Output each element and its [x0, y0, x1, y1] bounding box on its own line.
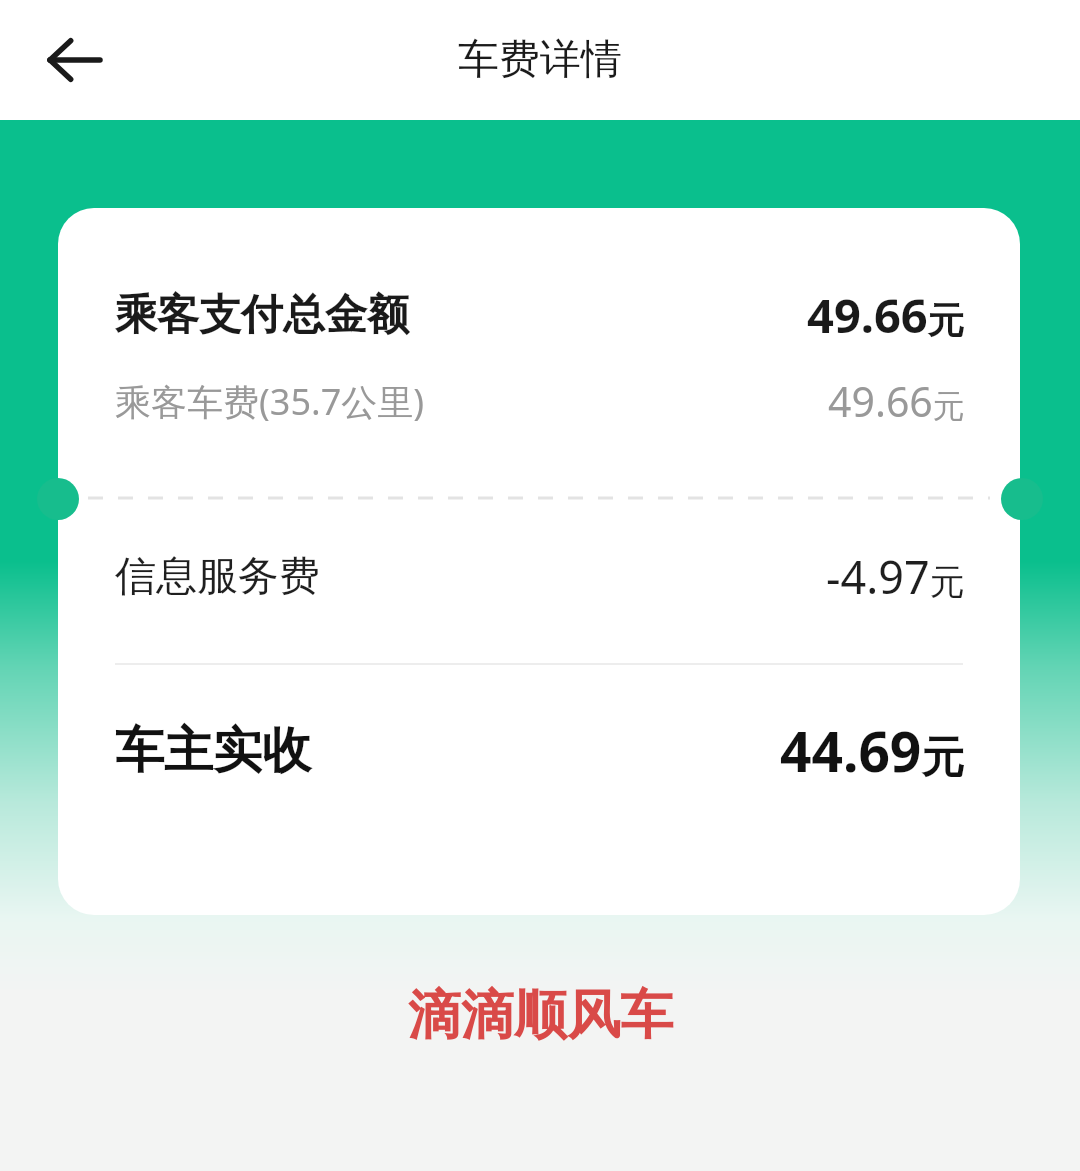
button[interactable]: 乘客车费(35.7公里)	[115, 373, 965, 429]
staticText: 49.66元	[828, 373, 965, 429]
staticText: 乘客支付总金额	[115, 289, 409, 342]
staticText: 44.69元	[780, 713, 965, 788]
staticText: -4.97元	[826, 546, 965, 607]
button[interactable]: 乘客支付总金额	[115, 283, 965, 347]
button[interactable]: 车主实收	[115, 713, 965, 788]
staticText: 信息服务费	[115, 551, 320, 603]
staticText: 滴滴顺风车	[408, 982, 673, 1049]
button[interactable]: 信息服务费	[115, 546, 965, 607]
staticText: 乘客车费(35.7公里)	[115, 377, 425, 426]
staticText: 车费详情	[458, 34, 622, 86]
staticText: 49.66元	[807, 283, 965, 347]
staticText: 车主实收	[115, 720, 311, 782]
button[interactable]: Back	[22, 7, 128, 113]
